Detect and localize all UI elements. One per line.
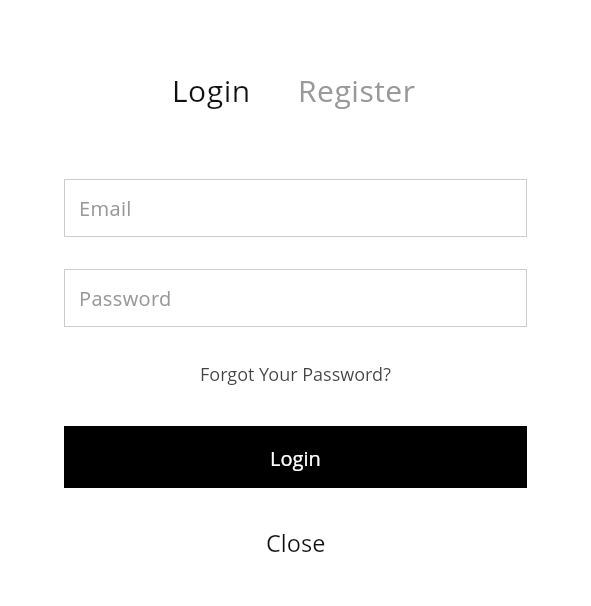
button[interactable]: Email: [64, 179, 527, 237]
staticText: Login: [270, 445, 321, 472]
button[interactable]: Close: [266, 527, 326, 559]
button[interactable]: Forgot Your Password?: [200, 362, 391, 387]
button[interactable]: Login: [64, 426, 527, 488]
staticText: Password: [79, 285, 172, 312]
staticText: Email: [79, 195, 132, 222]
button[interactable]: Register: [298, 70, 416, 111]
button[interactable]: Login: [172, 70, 251, 111]
button[interactable]: Password: [64, 269, 527, 327]
